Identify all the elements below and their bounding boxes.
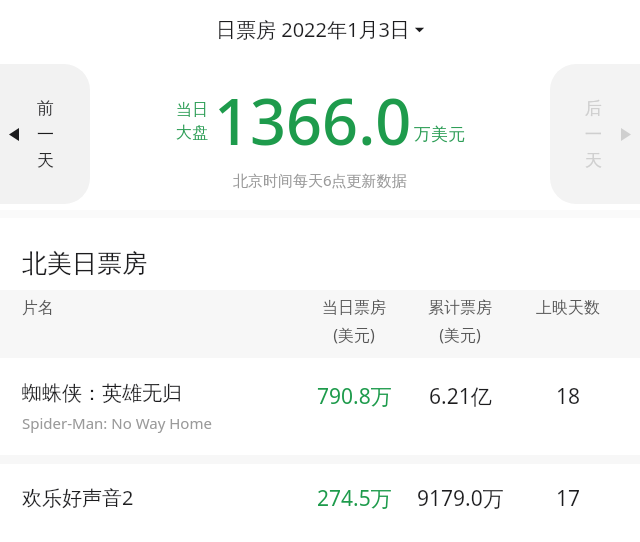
staticText: 万美元	[414, 124, 465, 145]
staticText: 一	[37, 124, 54, 145]
staticText: 6.21亿	[429, 382, 492, 411]
button[interactable]: 欢乐好声音2	[0, 464, 640, 542]
staticText: 日票房 2022年1月3日	[216, 16, 410, 43]
button[interactable]: 蜘蛛侠：英雄无归	[0, 358, 640, 455]
staticText: (美元)	[439, 324, 481, 346]
staticText: 后	[585, 98, 602, 119]
staticText: 1366.0	[214, 78, 412, 164]
staticText: 一	[585, 124, 602, 145]
staticText: 北京时间每天6点更新数据	[233, 170, 407, 190]
staticText: 18	[556, 382, 581, 411]
button[interactable]: 后	[550, 64, 640, 204]
staticText: 天	[585, 150, 602, 171]
button[interactable]: 前一天	[5, 125, 23, 143]
button[interactable]: 日票房 2022年1月3日	[210, 12, 431, 47]
staticText: 累计票房	[428, 298, 492, 318]
staticText: 欢乐好声音2	[22, 484, 134, 511]
button[interactable]: 前	[0, 64, 90, 204]
staticText: 天	[37, 150, 54, 171]
staticText: 9179.0万	[417, 484, 504, 513]
staticText: 蜘蛛侠：英雄无归	[22, 381, 182, 406]
staticText: 790.8万	[317, 382, 392, 411]
staticText: 前	[37, 98, 54, 119]
staticText: Spider-Man: No Way Home	[22, 413, 212, 433]
staticText: (美元)	[333, 324, 375, 346]
staticText: 274.5万	[317, 484, 392, 513]
staticText: 片名	[22, 298, 54, 318]
staticText: 上映天数	[536, 298, 600, 318]
staticText: 北美日票房	[22, 248, 147, 279]
staticText: 17	[556, 484, 581, 513]
staticText: 当日	[176, 100, 208, 120]
button[interactable]: 后一天	[617, 125, 635, 143]
staticText: 当日票房	[322, 298, 386, 318]
staticText: 大盘	[176, 123, 208, 143]
